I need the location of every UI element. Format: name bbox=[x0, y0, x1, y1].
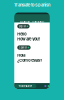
staticText: Spanish bbox=[19, 46, 27, 49]
staticText: ¿Cómo estás? bbox=[17, 58, 42, 63]
staticText: Hola bbox=[17, 53, 25, 58]
staticText: How are you? bbox=[17, 37, 40, 41]
staticText: Spanish Translator bbox=[19, 20, 44, 23]
staticText: English bbox=[19, 25, 26, 28]
staticText: Hello bbox=[17, 32, 26, 36]
staticText: Translate to Spanish bbox=[14, 2, 50, 7]
staticText: Translate bbox=[18, 84, 32, 88]
